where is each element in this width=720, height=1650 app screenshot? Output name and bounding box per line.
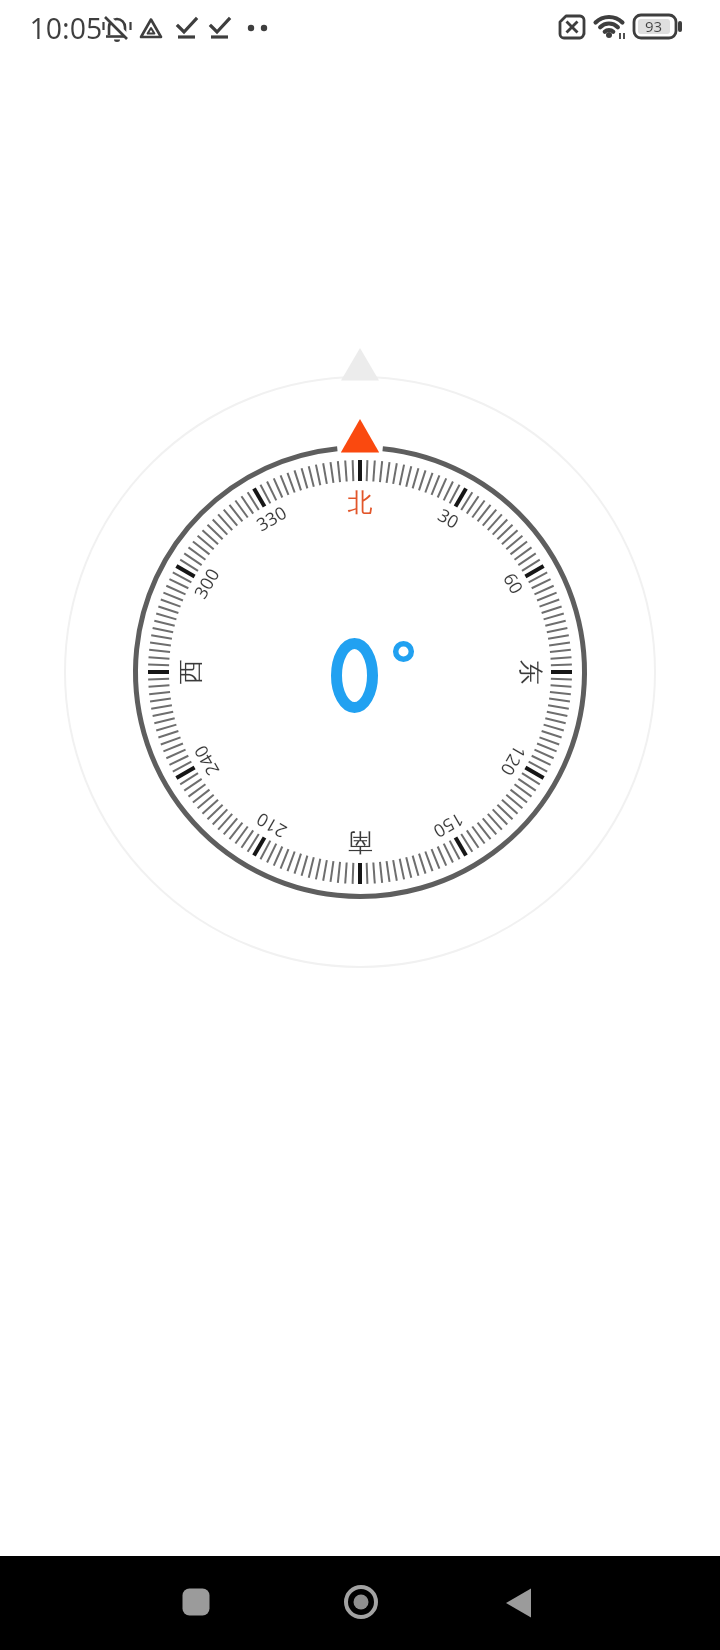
button[interactable] (320, 1562, 400, 1642)
button[interactable] (480, 1562, 560, 1642)
button[interactable] (156, 1562, 236, 1642)
